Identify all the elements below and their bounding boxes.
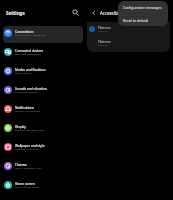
button[interactable]: Platinum (87, 22, 170, 36)
staticText: Quick Share • Android Auto (15, 53, 41, 56)
staticText: Connected devices (15, 49, 43, 53)
staticText: Settings (6, 10, 25, 16)
staticText: Configuration messages (123, 5, 162, 10)
button[interactable]: Home screen (3, 178, 83, 195)
button[interactable]: Reset to default (118, 14, 168, 26)
staticText: Platinum (98, 26, 111, 30)
staticText: Wallpaper and style (15, 144, 45, 148)
staticText: Sounds and vibration (15, 87, 47, 91)
staticText: Wallpapers • Color palette (15, 148, 40, 151)
staticText: Themes (15, 163, 27, 167)
staticText: Home screen (15, 182, 35, 186)
staticText: Sound mode • Ringtone (15, 91, 38, 94)
button[interactable]: Wallpaper and style (3, 140, 83, 157)
button[interactable]: Display (3, 121, 83, 138)
staticText: Reset to default (123, 18, 149, 23)
staticText: Modes • Routines (15, 72, 32, 75)
button[interactable]: Back (88, 7, 99, 18)
staticText: Accessibility (100, 10, 125, 16)
staticText: Status bar • Do not disturb (15, 110, 40, 113)
button[interactable]: Themes (3, 159, 83, 176)
button[interactable]: Sounds and vibration (3, 83, 83, 100)
staticText: Modes and Routines (15, 68, 46, 72)
staticText: Themes • Wallpapers • Icons (15, 167, 42, 170)
staticText: Layout • App icon badges (15, 186, 39, 189)
button[interactable]: Connections (3, 26, 83, 43)
button[interactable]: Modes and Routines (3, 64, 83, 81)
staticText: Notifications (15, 106, 34, 110)
staticText: Brightness • Eye comfort shield (15, 129, 45, 132)
staticText: Connections (15, 30, 34, 34)
button[interactable]: Platinum (87, 36, 170, 50)
staticText: philosophy (98, 44, 109, 47)
staticText: philosophy (98, 30, 109, 33)
button[interactable]: Connected devices (3, 45, 83, 62)
staticText: Platinum (98, 40, 111, 44)
button[interactable]: Notifications (3, 102, 83, 119)
button[interactable]: Search (70, 7, 81, 18)
staticText: Wi-Fi • Bluetooth • Airplane mode (15, 34, 47, 37)
button[interactable]: Configuration messages (118, 1, 168, 14)
staticText: Display (15, 125, 26, 129)
